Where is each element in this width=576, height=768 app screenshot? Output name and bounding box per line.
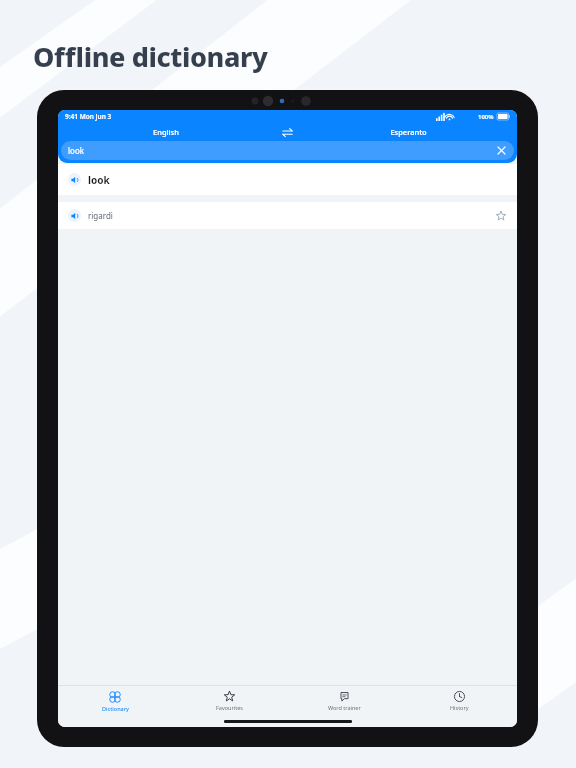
staticText: Favourites xyxy=(216,704,243,711)
button[interactable]: Favourites xyxy=(172,686,287,716)
staticText: look xyxy=(88,173,110,187)
button[interactable]: Pronounce rigardi xyxy=(58,202,517,229)
button[interactable]: English xyxy=(58,123,274,141)
staticText: Word trainer xyxy=(328,704,361,711)
button[interactable]: Dictionary xyxy=(58,686,172,716)
staticText: 9:41 Mon Jun 3 xyxy=(65,112,112,121)
staticText: 100% xyxy=(478,113,494,121)
staticText: look xyxy=(68,145,85,156)
staticText: English xyxy=(153,127,179,137)
button[interactable]: Esperanto xyxy=(300,123,517,141)
staticText: Offline dictionary xyxy=(33,38,268,75)
button[interactable]: Clear search xyxy=(495,144,508,157)
button[interactable]: Pronounce look xyxy=(68,173,81,186)
button[interactable]: Word trainer xyxy=(287,686,402,716)
staticText: rigardi xyxy=(88,210,113,221)
button[interactable]: History xyxy=(402,686,517,716)
staticText: Dictionary xyxy=(102,705,129,712)
button[interactable]: Pronounce look xyxy=(58,164,517,195)
staticText: Esperanto xyxy=(390,127,427,137)
staticText: History xyxy=(450,704,469,711)
button[interactable]: Pronounce rigardi xyxy=(68,209,81,222)
button[interactable]: Swap languages xyxy=(274,123,300,141)
button[interactable]: Add to favourites xyxy=(494,209,508,223)
button[interactable]: look xyxy=(61,141,514,160)
